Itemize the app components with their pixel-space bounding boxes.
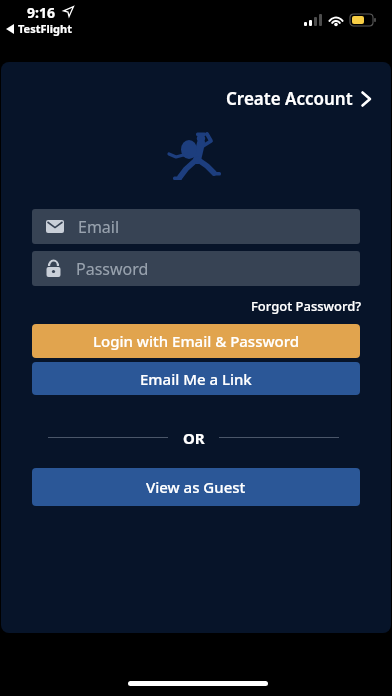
staticText: TestFlight (18, 21, 72, 36)
button[interactable]: Password (32, 251, 360, 286)
staticText: OR (183, 428, 205, 448)
button[interactable]: View as Guest (32, 468, 360, 506)
staticText: Email Me a Link (140, 369, 252, 389)
staticText: View as Guest (146, 477, 246, 497)
button[interactable]: Email Me a Link (32, 362, 360, 395)
button[interactable]: Email (32, 209, 360, 244)
button[interactable]: TestFlight (6, 21, 72, 36)
staticText: Login with Email & Password (93, 331, 300, 351)
button[interactable]: Forgot Password? (251, 297, 362, 315)
staticText: Create Account (226, 87, 353, 110)
staticText: Password (76, 258, 149, 280)
button[interactable]: Login with Email & Password (32, 324, 360, 358)
staticText: 9:16 (27, 3, 55, 22)
button[interactable]: Create Account (226, 87, 371, 110)
staticText: Email (78, 216, 120, 238)
staticText: Forgot Password? (251, 297, 362, 315)
